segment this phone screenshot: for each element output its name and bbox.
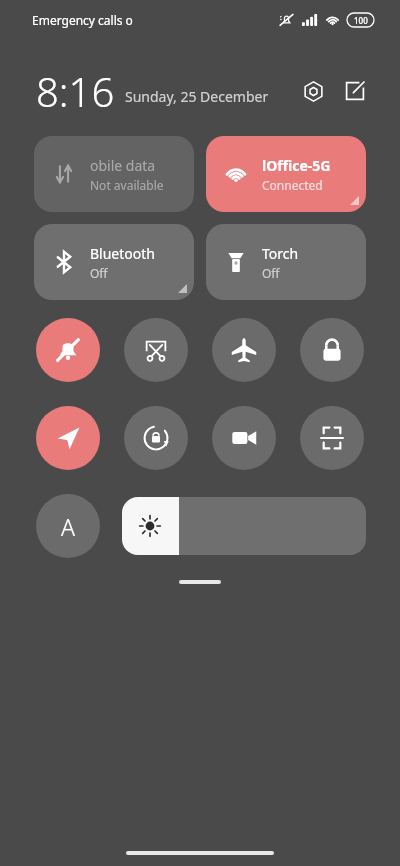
staticText: Not available [90,177,164,193]
button[interactable]: Auto brightness [36,494,100,558]
staticText: A [61,511,75,542]
staticText: Sunday, 25 December [125,87,269,106]
button[interactable]: Scan QR code [300,406,364,470]
button[interactable]: Airplane mode [212,318,276,382]
staticText: 8:16 [36,64,115,118]
button[interactable]: Mobile data [34,136,194,212]
button[interactable]: Lock screen [300,318,364,382]
staticText: Emergency calls o [32,12,133,28]
button[interactable]: Settings [296,74,330,108]
button[interactable]: Screen record [212,406,276,470]
staticText: lOffice-5G [262,156,331,175]
button[interactable]: Edit [338,74,372,108]
button[interactable]: Wi-Fi [206,136,366,212]
button[interactable]: Silent mode [36,318,100,382]
staticText: Torch [262,244,299,263]
button[interactable]: Bluetooth [34,224,194,300]
button[interactable]: Location [36,406,100,470]
staticText: 100 [354,15,368,26]
staticText: Off [262,265,280,281]
staticText: Bluetooth [90,244,155,263]
button[interactable]: Brightness [122,497,366,555]
button[interactable]: Auto rotate [124,406,188,470]
button[interactable]: Expand panel [179,580,221,584]
staticText: obile data [90,156,156,175]
staticText: Off [90,265,108,281]
staticText: Connected [262,177,323,193]
button[interactable]: Torch [206,224,366,300]
button[interactable]: Screenshot [124,318,188,382]
